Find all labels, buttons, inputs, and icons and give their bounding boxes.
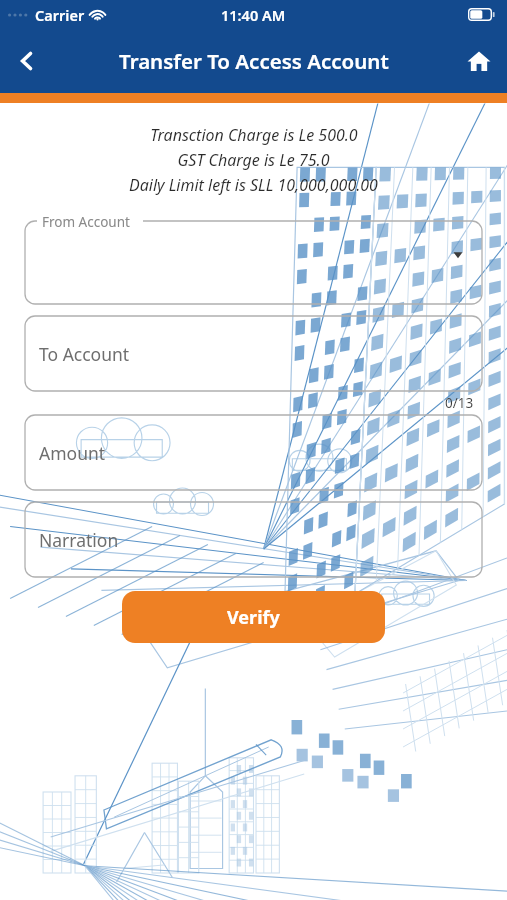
button[interactable]: Verify [122,591,385,643]
button[interactable]: Back [0,34,54,88]
staticText: Transfer To Access Account [119,47,389,75]
button[interactable]: To Account [25,316,482,391]
staticText: Amount [39,441,106,465]
staticText: 0/13 [445,394,474,412]
staticText: Narration [39,528,119,552]
button[interactable]: Narration [25,502,482,577]
button[interactable]: Amount [25,415,482,490]
staticText: Daily Limit left is SLL 10,000,000.00 [129,174,378,196]
staticText: Verify [227,605,280,630]
staticText: From Account [42,213,130,231]
staticText: Transction Charge is Le 500.0 [150,124,358,146]
staticText: Carrier [35,5,85,25]
staticText: 11:40 AM [221,5,286,25]
staticText: GST Charge is Le 75.0 [177,149,330,171]
button[interactable]: From Account [25,212,482,304]
staticText: To Account [39,342,130,366]
button[interactable]: Home [451,33,507,89]
